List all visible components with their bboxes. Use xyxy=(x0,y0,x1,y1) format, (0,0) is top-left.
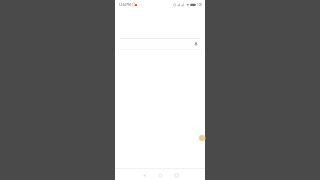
button[interactable]: Back xyxy=(140,171,148,179)
button[interactable]: Compose xyxy=(198,134,206,142)
staticText: 12:34 PM xyxy=(119,3,131,7)
button[interactable] xyxy=(120,38,200,50)
button[interactable]: Voice search xyxy=(193,41,199,47)
button[interactable]: Recents xyxy=(172,171,180,179)
button[interactable]: Home xyxy=(156,171,164,179)
staticText: 100 xyxy=(197,3,203,7)
